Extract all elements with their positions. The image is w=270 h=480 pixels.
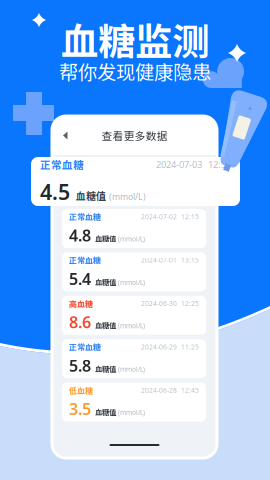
staticText: (mmol/L) (118, 234, 145, 243)
staticText: 血糖值 (95, 407, 116, 417)
staticText: 5.4 (69, 268, 91, 290)
staticText: (mmol/L) (118, 365, 145, 374)
staticText: 血糖值 (95, 363, 116, 374)
button[interactable]: 正常血糖 (62, 252, 206, 291)
staticText: 2024-06-29 11:25 (141, 342, 199, 351)
staticText: 查看更多数据 (101, 128, 167, 143)
staticText: 3.5 (69, 398, 91, 420)
staticText: 2024-07-02 12:15 (141, 212, 199, 221)
staticText: 4.8 (69, 224, 91, 246)
staticText: 血糖值 (76, 188, 106, 203)
button[interactable]: 低血糖 (62, 383, 206, 422)
staticText: 低血糖 (69, 384, 93, 396)
button[interactable]: 正常血糖 (62, 339, 206, 378)
staticText: 正常血糖 (69, 211, 101, 222)
staticText: (mmol/L) (118, 408, 145, 417)
staticText: (mmol/L) (118, 278, 145, 287)
staticText: 2024-06-28 12:45 (141, 386, 199, 395)
staticText: 血糖值 (95, 320, 116, 330)
staticText: 帮你发现健康隐患 (59, 57, 211, 85)
staticText: 高血糖 (69, 298, 93, 309)
staticText: 血糖值 (95, 233, 116, 244)
staticText: 正常血糖 (40, 157, 84, 172)
button[interactable]: 返回 (56, 125, 76, 146)
staticText: 2024-07-03 12:30 (156, 158, 231, 171)
staticText: 2024-07-01 13:15 (141, 255, 199, 265)
staticText: 正常血糖 (69, 254, 101, 266)
staticText: 2024-06-30 12:25 (141, 299, 199, 308)
button[interactable]: 正常血糖 (31, 157, 240, 206)
staticText: 血糖监测 (61, 12, 209, 66)
staticText: 8.6 (69, 311, 91, 333)
button[interactable]: 高血糖 (62, 296, 206, 335)
staticText: 5.8 (69, 355, 91, 376)
staticText: (mmol/L) (109, 191, 146, 202)
button[interactable]: 正常血糖 (62, 209, 206, 248)
staticText: 4.5 (40, 177, 70, 206)
staticText: (mmol/L) (118, 321, 145, 330)
staticText: 正常血糖 (69, 341, 101, 353)
staticText: 血糖值 (95, 276, 116, 287)
